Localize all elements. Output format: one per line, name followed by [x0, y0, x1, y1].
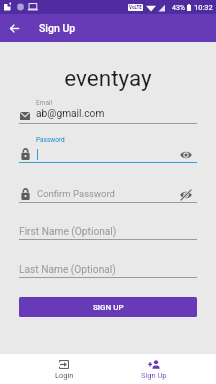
staticText: Sign Up — [141, 371, 167, 380]
staticText: eventyay — [0, 65, 216, 91]
staticText: Sign Up — [39, 22, 76, 34]
staticText: 43% — [172, 4, 185, 12]
staticText: VoLTE — [129, 5, 142, 10]
staticText: SIGN UP — [93, 303, 124, 312]
staticText: Email — [36, 99, 53, 107]
staticText: Password — [36, 136, 65, 144]
button[interactable]: Show password — [179, 148, 193, 162]
staticText: 10:32 — [194, 3, 213, 12]
button[interactable]: First Name (Optional) — [19, 225, 197, 239]
staticText: Confirm Password — [37, 188, 115, 199]
button[interactable]: Sign Up — [109, 354, 199, 384]
button[interactable]: Hide password — [179, 188, 193, 202]
staticText: Login — [55, 371, 74, 380]
staticText: ab@gmail.com — [36, 108, 105, 120]
staticText: Last Name (Optional) — [19, 264, 116, 276]
button[interactable]: Login — [19, 354, 109, 384]
staticText: First Name (Optional) — [19, 226, 117, 238]
button[interactable]: SIGN UP — [19, 297, 197, 317]
button[interactable]: Back — [4, 18, 25, 39]
button[interactable]: Last Name (Optional) — [19, 263, 197, 277]
